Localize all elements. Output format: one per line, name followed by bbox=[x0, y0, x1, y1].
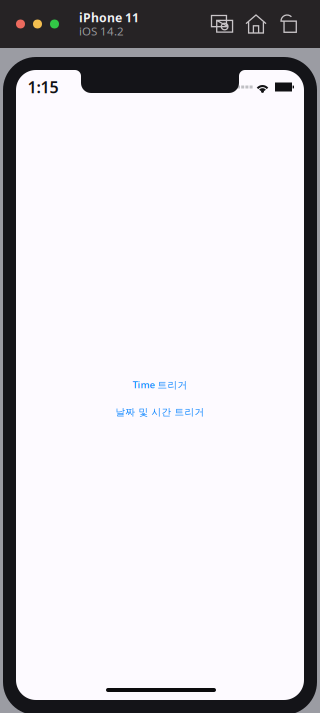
staticText: iPhone 11 bbox=[79, 9, 139, 26]
button[interactable]: Home bbox=[246, 15, 266, 33]
button[interactable]: Time 트리거 bbox=[132, 378, 187, 391]
staticText: 날짜 및 시간 트리거 bbox=[115, 406, 204, 418]
button[interactable]: Screenshot bbox=[211, 15, 233, 33]
staticText: Time 트리거 bbox=[132, 378, 187, 391]
staticText: iOS 14.2 bbox=[79, 23, 124, 39]
staticText: 1:15 bbox=[27, 76, 58, 98]
button[interactable]: 날짜 및 시간 트리거 bbox=[115, 406, 204, 418]
button[interactable]: Rotate bbox=[279, 15, 297, 33]
